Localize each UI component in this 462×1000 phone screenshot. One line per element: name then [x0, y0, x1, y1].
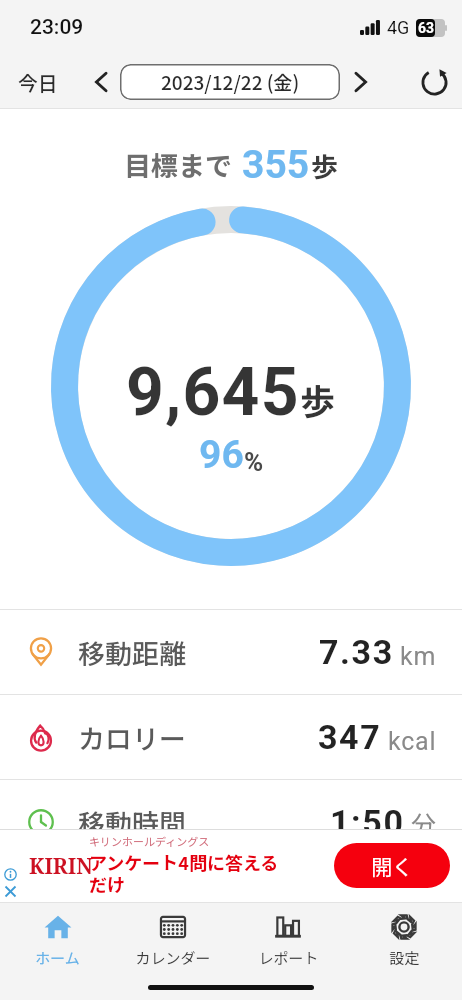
- button[interactable]: 2023/12/22 (金): [120, 64, 340, 100]
- staticText: km: [400, 642, 437, 671]
- button[interactable]: 移動距離: [0, 610, 462, 694]
- staticText: 1:50: [330, 802, 405, 842]
- staticText: 歩: [300, 374, 336, 425]
- staticText: 4G: [387, 17, 410, 38]
- button[interactable]: Next day: [345, 66, 377, 98]
- staticText: レポート: [258, 947, 319, 969]
- button[interactable]: 今日: [10, 62, 66, 103]
- staticText: カロリー: [78, 718, 186, 757]
- staticText: 9,645: [126, 354, 300, 431]
- button[interactable]: カロリー: [0, 695, 462, 779]
- button[interactable]: Ad info: [4, 868, 17, 881]
- staticText: %: [244, 447, 264, 477]
- staticText: 63: [418, 20, 435, 36]
- button[interactable]: 開く: [334, 843, 450, 888]
- button[interactable]: Refresh: [417, 65, 451, 99]
- staticText: 目標まで: [124, 145, 232, 184]
- button[interactable]: Previous day: [85, 66, 117, 98]
- staticText: 347: [318, 717, 382, 757]
- staticText: 2023/12/22 (金): [161, 68, 300, 96]
- staticText: カレンダー: [135, 947, 211, 969]
- staticText: ホーム: [35, 947, 80, 969]
- staticText: 23:09: [30, 15, 84, 40]
- button[interactable]: Ad info: [0, 829, 462, 902]
- button[interactable]: 設定: [346, 902, 462, 974]
- staticText: 分: [411, 805, 437, 841]
- staticText: 355: [242, 142, 310, 188]
- staticText: 今日: [18, 68, 58, 97]
- staticText: 歩: [311, 146, 338, 185]
- staticText: アンケート4問に答えるだけ: [89, 849, 279, 897]
- staticText: 96: [199, 432, 244, 478]
- button[interactable]: 移動時間: [0, 780, 462, 864]
- staticText: KIRIN: [29, 852, 93, 881]
- staticText: 移動時間: [78, 803, 186, 842]
- button[interactable]: ホーム: [0, 902, 115, 974]
- staticText: 開く: [371, 851, 413, 881]
- staticText: 設定: [389, 947, 420, 969]
- staticText: キリンホールディングス: [89, 833, 210, 849]
- staticText: kcal: [388, 727, 437, 756]
- staticText: 移動距離: [78, 633, 186, 672]
- button[interactable]: Close ad: [4, 885, 17, 898]
- button[interactable]: カレンダー: [115, 902, 230, 974]
- button[interactable]: レポート: [230, 902, 346, 974]
- staticText: 7.33: [319, 632, 394, 672]
